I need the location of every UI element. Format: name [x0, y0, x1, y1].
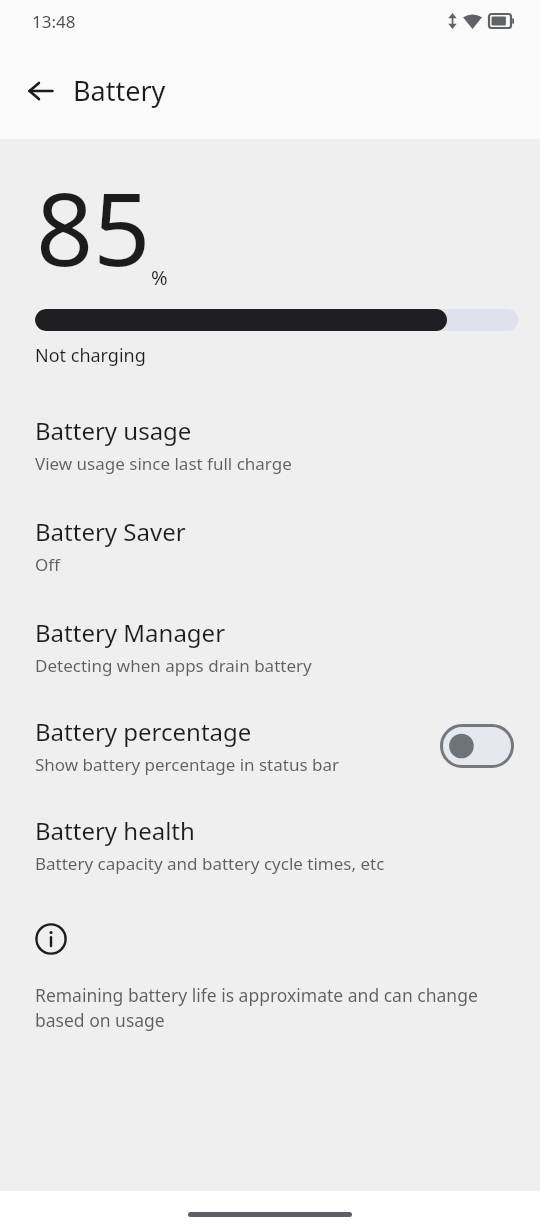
button[interactable]: Battery percentage toggle, off: [440, 724, 514, 768]
staticText: Off: [35, 553, 60, 576]
button[interactable]: Battery health: [0, 814, 540, 875]
staticText: Battery usage: [35, 414, 192, 447]
staticText: 13:48: [32, 10, 76, 33]
staticText: View usage since last full charge: [35, 452, 292, 475]
staticText: Show battery percentage in status bar: [35, 753, 339, 776]
staticText: Detecting when apps drain battery: [35, 654, 312, 677]
button[interactable]: Battery usage: [0, 414, 540, 475]
staticText: %: [151, 264, 168, 291]
button[interactable]: Information: [35, 919, 75, 959]
staticText: Battery: [73, 72, 166, 109]
staticText: Battery capacity and battery cycle times…: [35, 852, 385, 875]
staticText: Battery percentage: [35, 715, 252, 748]
staticText: Battery Saver: [35, 515, 186, 548]
staticText: Battery Manager: [35, 616, 226, 649]
staticText: Battery health: [35, 814, 195, 847]
button[interactable]: Battery Saver: [0, 515, 540, 576]
staticText: 85: [36, 159, 151, 295]
staticText: Remaining battery life is approximate an…: [35, 983, 482, 1033]
button[interactable]: Back: [19, 69, 63, 113]
staticText: Not charging: [35, 343, 146, 368]
button[interactable]: Battery percentage: [0, 715, 540, 776]
button[interactable]: Battery Manager: [0, 616, 540, 677]
